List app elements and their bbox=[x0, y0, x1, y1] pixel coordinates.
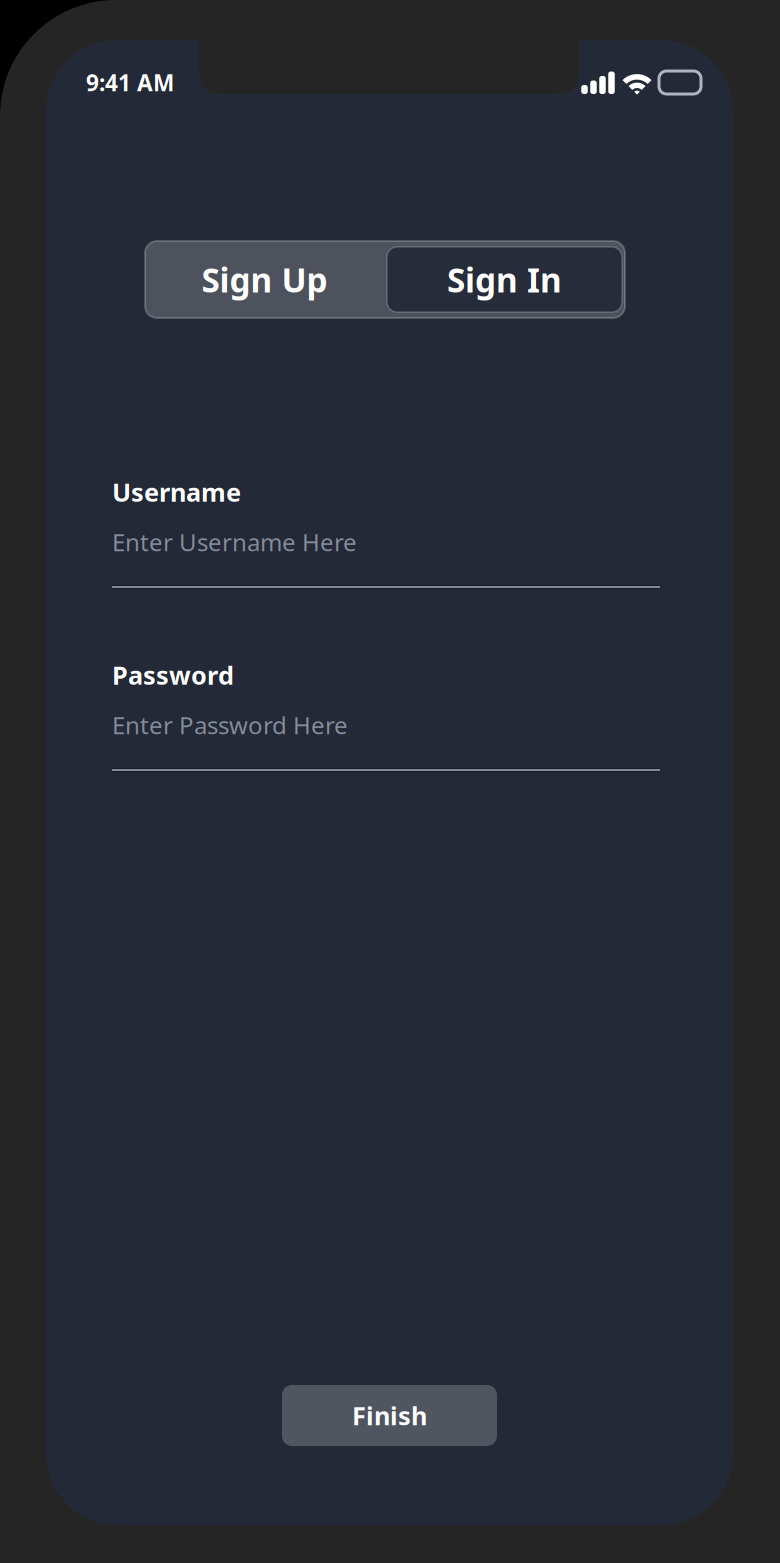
staticText: Sign In bbox=[447, 257, 562, 302]
staticText: Username bbox=[112, 475, 241, 509]
staticText: 9:41 AM bbox=[86, 67, 174, 97]
staticText: Enter Password Here bbox=[112, 709, 348, 741]
staticText: Password bbox=[112, 658, 234, 692]
staticText: Sign Up bbox=[201, 257, 327, 302]
staticText: Enter Username Here bbox=[112, 526, 357, 558]
button[interactable]: Sign In bbox=[384, 241, 625, 318]
staticText: Finish bbox=[352, 1399, 427, 1432]
button[interactable]: Sign Up bbox=[145, 241, 384, 318]
button[interactable]: Finish bbox=[282, 1385, 497, 1446]
